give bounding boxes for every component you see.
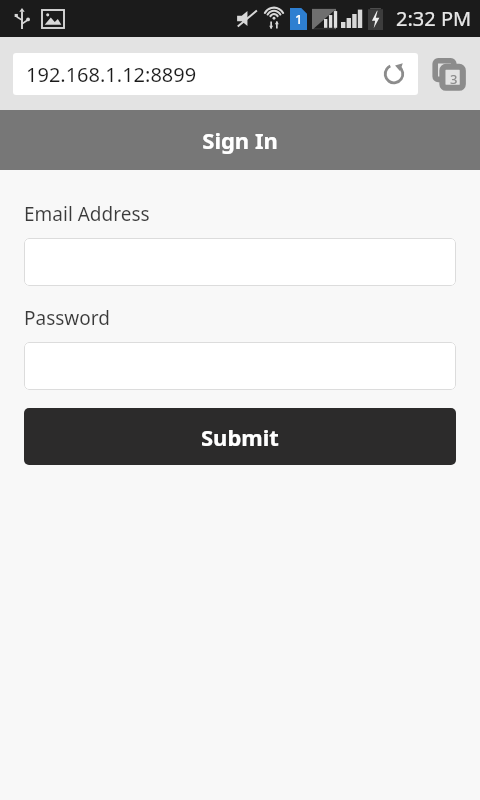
- staticText: Email Address: [24, 201, 150, 227]
- staticText: Sign In: [202, 125, 278, 155]
- button[interactable]: [24, 238, 456, 286]
- staticText: Password: [24, 305, 110, 331]
- button[interactable]: Tabs, 3 open: [428, 53, 470, 95]
- button[interactable]: 192.168.1.12:8899: [13, 53, 418, 95]
- button[interactable]: Reload: [376, 56, 412, 92]
- button[interactable]: Submit: [24, 408, 456, 465]
- staticText: Submit: [201, 422, 279, 452]
- button[interactable]: [24, 342, 456, 390]
- staticText: 2:32 PM: [396, 5, 472, 32]
- staticText: 1: [295, 10, 303, 28]
- staticText: 3: [450, 70, 458, 88]
- staticText: 192.168.1.12:8899: [26, 61, 376, 88]
